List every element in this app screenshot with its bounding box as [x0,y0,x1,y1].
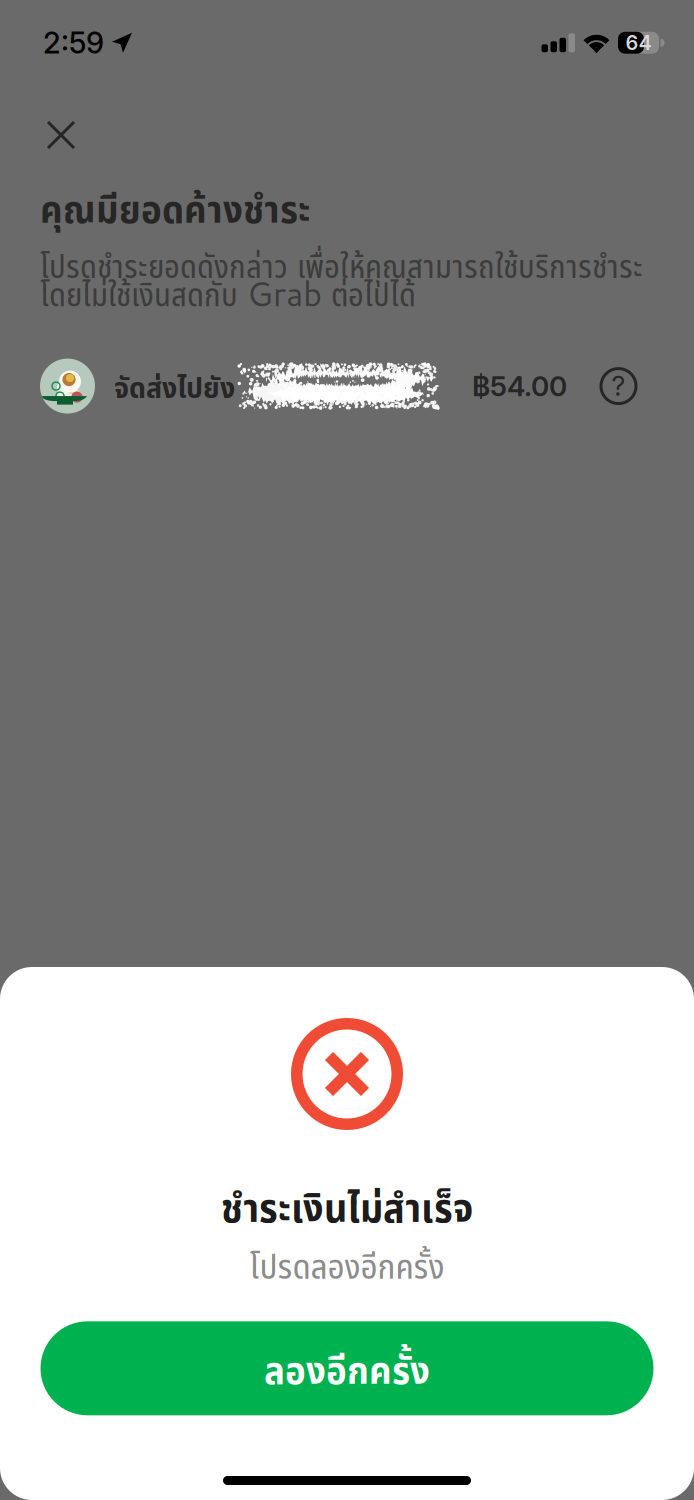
staticText: ฿54.00 [472,369,567,403]
staticText: 2:59 [43,25,104,60]
button[interactable]: Close [0,94,98,162]
button[interactable]: Help [567,369,636,404]
staticText: ? [611,370,625,402]
staticText: ลองอีกครั้ง [264,1341,430,1396]
staticText: โปรดลองอีกครั้ง [249,1240,444,1289]
button[interactable]: ลองอีกครั้ง [40,1321,653,1415]
staticText: โดยไม่ใช้เงินสดกับ Grab ต่อไปได้ [40,270,416,317]
staticText: โปรดชำระยอดดังกล่าว เพื่อให้คุณสามารถใช้… [40,242,643,288]
staticText: คุณมียอดค้างชำระ [40,180,311,234]
staticText: 64 [625,31,651,55]
staticText: จัดส่งไปยัง [114,365,235,407]
staticText: ชำระเงินไม่สำเร็จ [221,1178,473,1234]
